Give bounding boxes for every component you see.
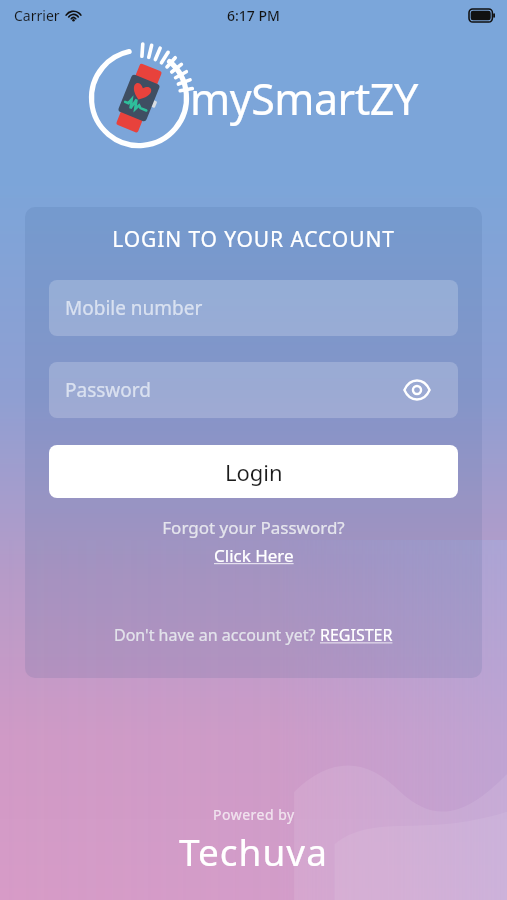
staticText: Techuva — [179, 826, 328, 876]
staticText: Password — [65, 377, 151, 403]
staticText: Login — [225, 457, 283, 487]
button[interactable]: Password — [49, 362, 458, 418]
staticText: Mobile number — [65, 295, 203, 321]
staticText: Forgot your Password? — [25, 516, 482, 539]
staticText: Don't have an account yet? — [114, 624, 320, 646]
button[interactable]: REGISTER — [320, 624, 393, 646]
staticText: Carrier — [14, 6, 60, 25]
button[interactable]: Login — [49, 445, 458, 498]
staticText: 6:17 PM — [227, 6, 280, 25]
button[interactable]: Show password — [400, 373, 434, 407]
staticText: mySmartZY — [190, 69, 418, 128]
staticText: Click Here — [214, 544, 294, 567]
staticText: LOGIN TO YOUR ACCOUNT — [25, 225, 482, 254]
button[interactable]: Click Here — [214, 544, 294, 567]
staticText: REGISTER — [320, 624, 393, 646]
staticText: Powered by — [213, 805, 295, 824]
button[interactable]: Mobile number — [49, 280, 458, 336]
